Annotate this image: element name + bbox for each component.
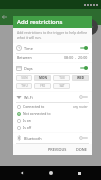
- staticText: FRI: [40, 84, 45, 88]
- button[interactable]: Toggle: [79, 65, 88, 71]
- staticText: Time: [24, 46, 33, 51]
- staticText: Is on: [23, 118, 31, 123]
- button[interactable]: Back: [16, 167, 28, 179]
- button[interactable]: MON: [34, 75, 51, 81]
- button[interactable]: Home: [45, 167, 57, 179]
- staticText: Add restrictions: [17, 18, 63, 26]
- button[interactable]: SUN: [16, 75, 32, 81]
- button[interactable]: Bluetooth: [13, 133, 92, 143]
- button[interactable]: Add restrictions: [13, 16, 92, 28]
- staticText: Days: [24, 66, 33, 71]
- staticText: Add restrictions to the trigger to help …: [17, 30, 88, 40]
- staticText: MON: [39, 76, 47, 80]
- button[interactable]: Time: [13, 43, 92, 53]
- button[interactable]: Days: [13, 63, 92, 73]
- button[interactable]: Is off: [13, 124, 92, 131]
- staticText: Bluetooth: [24, 136, 42, 141]
- staticText: DONE: [76, 147, 87, 152]
- button[interactable]: Add: [82, 19, 98, 35]
- button[interactable]: TUE: [53, 75, 70, 81]
- button[interactable]: Toggle: [79, 45, 88, 51]
- button[interactable]: Recents: [73, 167, 85, 179]
- button[interactable]: Toggle: [79, 135, 88, 141]
- button[interactable]: Is on: [13, 117, 92, 124]
- staticText: SUN: [21, 76, 28, 80]
- button[interactable]: Wi-Fi: [13, 92, 92, 102]
- staticText: 08:00 - 20:00: [64, 55, 88, 60]
- button[interactable]: DONE: [74, 146, 89, 153]
- button[interactable]: WED: [72, 75, 89, 81]
- button[interactable]: Between: [13, 54, 92, 62]
- staticText: SAT: [59, 84, 65, 88]
- button[interactable]: Not connected to: [13, 110, 92, 117]
- staticText: Between: [17, 55, 32, 60]
- staticText: TUE: [59, 76, 65, 80]
- button[interactable]: SAT: [53, 83, 70, 89]
- staticText: Is off: [23, 125, 32, 130]
- button[interactable]: PREVIOUS: [46, 146, 69, 153]
- button[interactable]: Toggle: [79, 94, 88, 100]
- staticText: THU: [21, 84, 28, 88]
- staticText: Wi-Fi: [24, 95, 33, 100]
- staticText: Connected to: [23, 104, 45, 109]
- button[interactable]: THU: [16, 83, 32, 89]
- staticText: Not connected to: [23, 111, 51, 116]
- button[interactable]: FRI: [34, 83, 51, 89]
- staticText: WED: [77, 76, 84, 80]
- button[interactable]: Connected to: [13, 103, 92, 110]
- staticText: any router: [73, 105, 88, 109]
- staticText: PREVIOUS: [48, 147, 67, 152]
